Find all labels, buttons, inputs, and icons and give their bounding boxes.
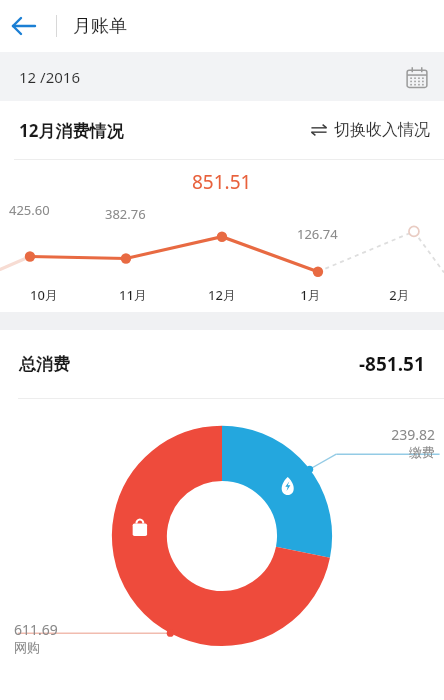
staticText: 425.60: [9, 201, 50, 219]
staticText: 12 /2016: [19, 67, 80, 87]
staticText: 总消费: [19, 354, 70, 375]
staticText: 382.76: [105, 205, 146, 223]
staticText: 12月消费情况: [19, 119, 124, 142]
staticText: 126.74: [297, 225, 338, 243]
staticText: 851.51: [192, 169, 252, 195]
button[interactable]: 12 /2016: [0, 52, 444, 101]
staticText: 11月: [119, 286, 147, 304]
staticText: 239.82: [391, 425, 435, 444]
staticText: 611.69: [14, 620, 58, 639]
other: Pick month: [404, 64, 430, 90]
staticText: 12月: [208, 286, 236, 304]
staticText: 切换收入情况: [334, 120, 430, 140]
staticText: 10月: [30, 286, 58, 304]
staticText: -851.51: [359, 351, 425, 377]
staticText: 1月: [300, 286, 321, 304]
staticText: 2月: [389, 286, 410, 304]
button[interactable]: 切换收入情况: [300, 112, 444, 148]
staticText: 月账单: [73, 15, 127, 38]
button[interactable]: Back: [0, 2, 48, 50]
button[interactable]: 总消费: [0, 330, 444, 398]
staticText: 缴费: [409, 444, 435, 460]
staticText: 网购: [14, 639, 40, 655]
